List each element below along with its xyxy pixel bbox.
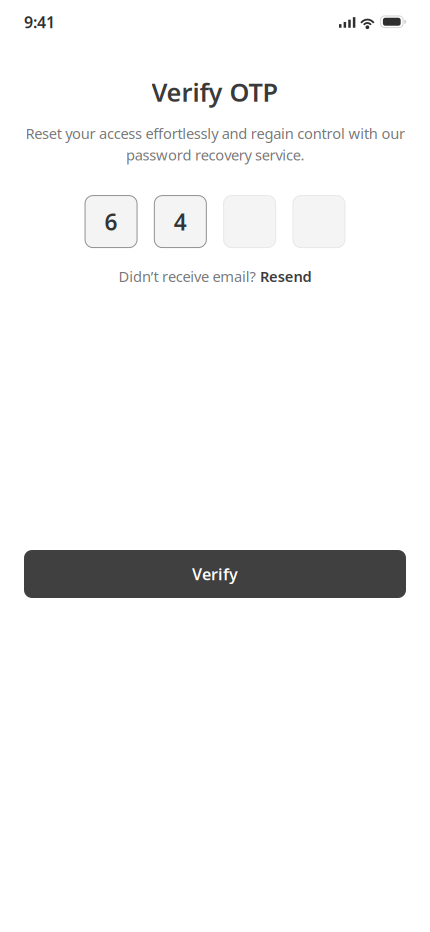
staticText: Reset your access effortlessly and regai… [25,124,405,165]
staticText: Resend [260,267,311,286]
staticText: Verify [192,563,238,585]
staticText: 6 [105,206,118,237]
staticText: Didn’t receive email? [118,267,255,286]
button[interactable]: Verify [24,550,406,598]
staticText: 9:41 [24,11,55,33]
staticText: 4 [174,206,187,237]
staticText: Verify OTP [151,75,278,109]
button[interactable]: Digit 1, 6 [85,196,137,248]
button[interactable]: Didn’t receive email? [118,265,311,288]
button[interactable]: Digit 2, 4 [154,196,206,248]
